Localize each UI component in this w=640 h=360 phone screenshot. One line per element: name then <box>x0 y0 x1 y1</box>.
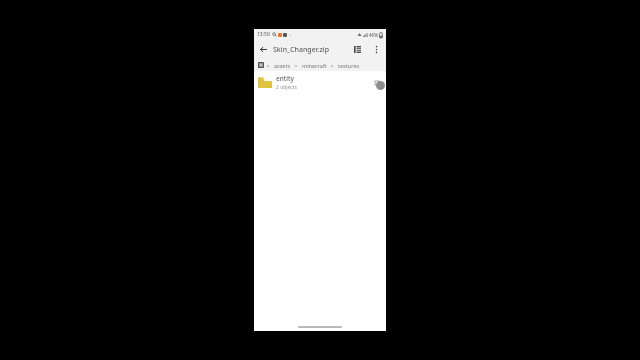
staticText: 13:50 <box>257 31 270 38</box>
button[interactable]: Change view <box>348 40 367 59</box>
staticText: + <box>289 32 292 37</box>
button[interactable]: Back <box>254 40 273 59</box>
staticText: entity <box>276 74 294 83</box>
button[interactable]: assets <box>274 62 291 69</box>
staticText: > <box>329 62 336 69</box>
button[interactable]: minecraft <box>302 62 327 69</box>
button[interactable]: textures <box>338 62 360 69</box>
button[interactable]: Internal storage <box>258 62 264 68</box>
staticText: > <box>265 62 272 69</box>
staticText: Skin_Changer.zip <box>273 45 348 55</box>
other: Scroll <box>376 81 385 90</box>
staticText: 2 objects <box>276 84 297 91</box>
button[interactable]: More options <box>367 40 386 59</box>
staticText: > <box>293 62 300 69</box>
button[interactable]: Select entity <box>371 77 382 88</box>
staticText: 46% <box>369 32 378 38</box>
button[interactable]: entity <box>254 71 386 93</box>
